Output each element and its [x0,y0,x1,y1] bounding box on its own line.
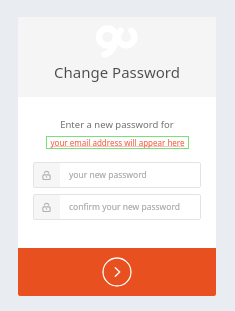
staticText: Enter a new password for [60,118,174,131]
button[interactable]: your new password [33,162,201,188]
staticText: your email address will appear here [50,137,185,148]
staticText: Change Password [54,62,180,82]
button[interactable]: Submit [102,257,132,287]
button[interactable]: your email address will appear here [46,136,189,149]
staticText: your new password [69,169,147,181]
button[interactable]: confirm your new password [33,194,201,220]
staticText: confirm your new password [69,201,181,213]
